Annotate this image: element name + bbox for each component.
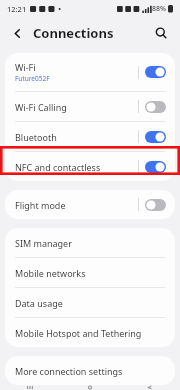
button[interactable]: Back: [8, 24, 26, 42]
button[interactable]: Toggle on: [145, 131, 166, 143]
button[interactable]: Toggle on: [145, 66, 166, 78]
button[interactable]: Mobile Hotspot and Tethering: [5, 318, 175, 347]
staticText: Bluetooth: [15, 131, 57, 143]
staticText: Flight mode: [15, 199, 66, 211]
button[interactable]: Toggle on: [145, 161, 166, 173]
button[interactable]: Flight mode: [5, 190, 175, 219]
staticText: Wi-Fi: [15, 61, 36, 73]
staticText: Wi-Fi Calling: [15, 101, 67, 113]
button[interactable]: Back: [120, 385, 180, 390]
staticText: Future052F: [15, 74, 50, 83]
staticText: 12:21: [7, 4, 27, 14]
staticText: Mobile networks: [15, 267, 86, 279]
staticText: Mobile Hotspot and Tethering: [15, 327, 142, 339]
button[interactable]: Search: [151, 23, 171, 43]
button[interactable]: NFC and contactless payments: [5, 152, 175, 181]
staticText: Connections: [33, 24, 114, 42]
button[interactable]: Wi-Fi Calling: [5, 92, 175, 121]
button[interactable]: More connection settings: [5, 356, 175, 385]
button[interactable]: Recents: [0, 385, 60, 390]
button[interactable]: Mobile networks: [5, 258, 175, 287]
button[interactable]: Data usage: [5, 288, 175, 317]
staticText: SIM manager: [15, 237, 72, 249]
staticText: Data usage: [15, 297, 63, 309]
staticText: NFC and contactless payments: [15, 161, 138, 173]
button[interactable]: Wi-Fi: [5, 53, 175, 91]
staticText: More connection settings: [15, 365, 123, 377]
button[interactable]: Bluetooth: [5, 122, 175, 151]
button[interactable]: SIM manager: [5, 228, 175, 257]
staticText: 88%: [152, 4, 166, 14]
button[interactable]: Home: [60, 385, 120, 390]
button[interactable]: Toggle off: [145, 199, 166, 211]
button[interactable]: Toggle off: [145, 101, 166, 113]
